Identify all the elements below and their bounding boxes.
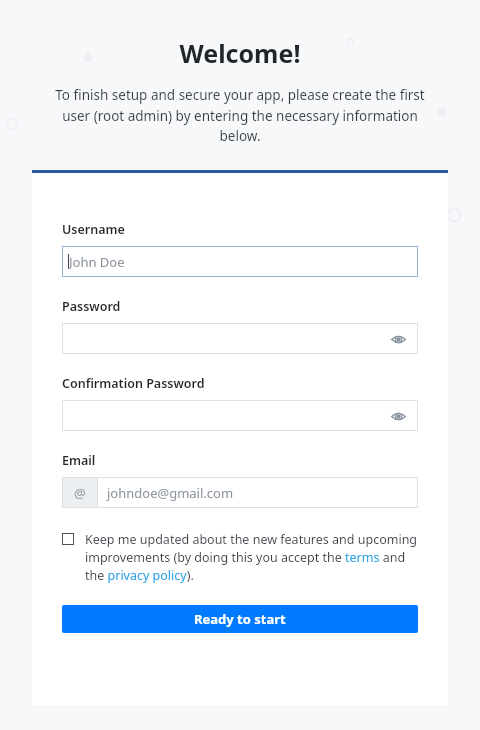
button[interactable]: Show password: [62, 323, 418, 354]
button[interactable]: John Doe: [62, 246, 418, 277]
staticText: Ready to start: [194, 610, 286, 628]
button[interactable]: Keep me updated about the new features a…: [62, 531, 418, 584]
staticText: Email: [62, 452, 96, 469]
staticText: johndoe@gmail.com: [107, 484, 234, 502]
staticText: Keep me updated about the new features a…: [85, 531, 418, 584]
staticText: To finish setup and secure your app, ple…: [54, 86, 426, 145]
button[interactable]: Show password: [388, 329, 408, 349]
staticText: Username: [62, 221, 125, 238]
staticText: Confirmation Password: [62, 375, 205, 392]
staticText: John Doe: [69, 253, 125, 271]
button[interactable]: Show confirmation password: [62, 400, 418, 431]
button[interactable]: @: [62, 477, 418, 508]
staticText: Password: [62, 298, 121, 315]
button[interactable]: Ready to start: [62, 605, 418, 633]
staticText: Welcome!: [0, 36, 480, 70]
button[interactable]: Show confirmation password: [388, 406, 408, 426]
staticText: @: [74, 484, 86, 502]
